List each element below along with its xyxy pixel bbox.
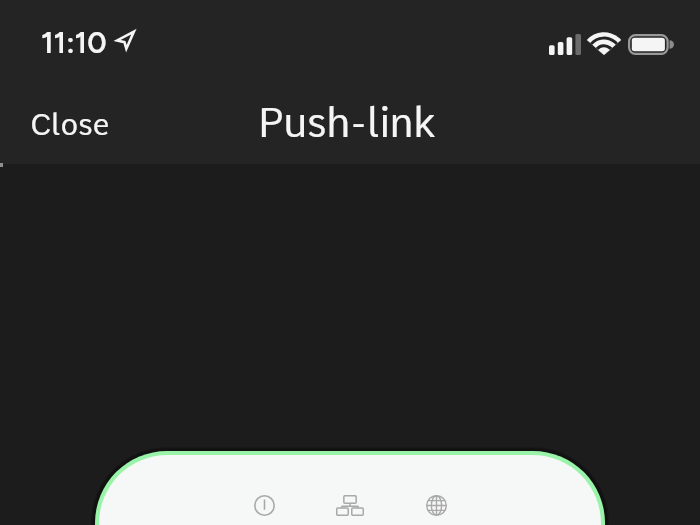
staticText: Close [30,106,110,142]
staticText: Push-link [258,99,435,147]
staticText: 11:10 [41,24,107,60]
button[interactable]: Power [221,495,307,525]
button[interactable]: Network [307,495,393,525]
button[interactable]: Internet [393,495,479,525]
button[interactable]: Close [0,100,134,150]
